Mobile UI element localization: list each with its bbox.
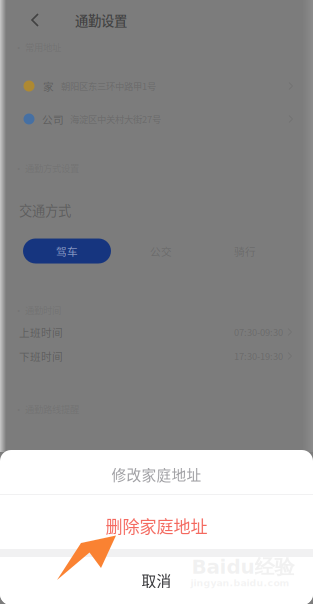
button[interactable]: 取消 bbox=[0, 557, 313, 604]
staticText: 07:30-09:30 bbox=[234, 325, 283, 339]
staticText: 骑行 bbox=[234, 243, 256, 259]
staticText: 上班时间 bbox=[19, 324, 63, 340]
staticText: 取消 bbox=[141, 569, 171, 591]
staticText: 公交 bbox=[150, 243, 172, 259]
staticText: 交通方式 bbox=[19, 200, 71, 220]
staticText: Baidu经验 bbox=[191, 554, 294, 580]
staticText: 家 bbox=[43, 78, 54, 94]
staticText: 驾车 bbox=[56, 243, 78, 259]
button[interactable]: 驾车 bbox=[23, 238, 111, 263]
staticText: 下班时间 bbox=[19, 348, 63, 364]
staticText: jingyan.baidu.com bbox=[190, 578, 289, 588]
staticText: 17:30-19:30 bbox=[234, 349, 283, 363]
staticText: 通勤设置 bbox=[75, 10, 127, 30]
staticText: 海淀区中关村大街27号 bbox=[70, 112, 161, 126]
staticText: 删除家庭地址 bbox=[105, 513, 207, 538]
staticText: 修改家庭地址 bbox=[111, 464, 201, 485]
staticText: 朝阳区东三环中路甲1号 bbox=[61, 79, 156, 93]
button[interactable]: 删除家庭地址 bbox=[0, 495, 313, 549]
staticText: 公司 bbox=[42, 111, 64, 127]
button[interactable]: 返回 bbox=[28, 12, 42, 28]
